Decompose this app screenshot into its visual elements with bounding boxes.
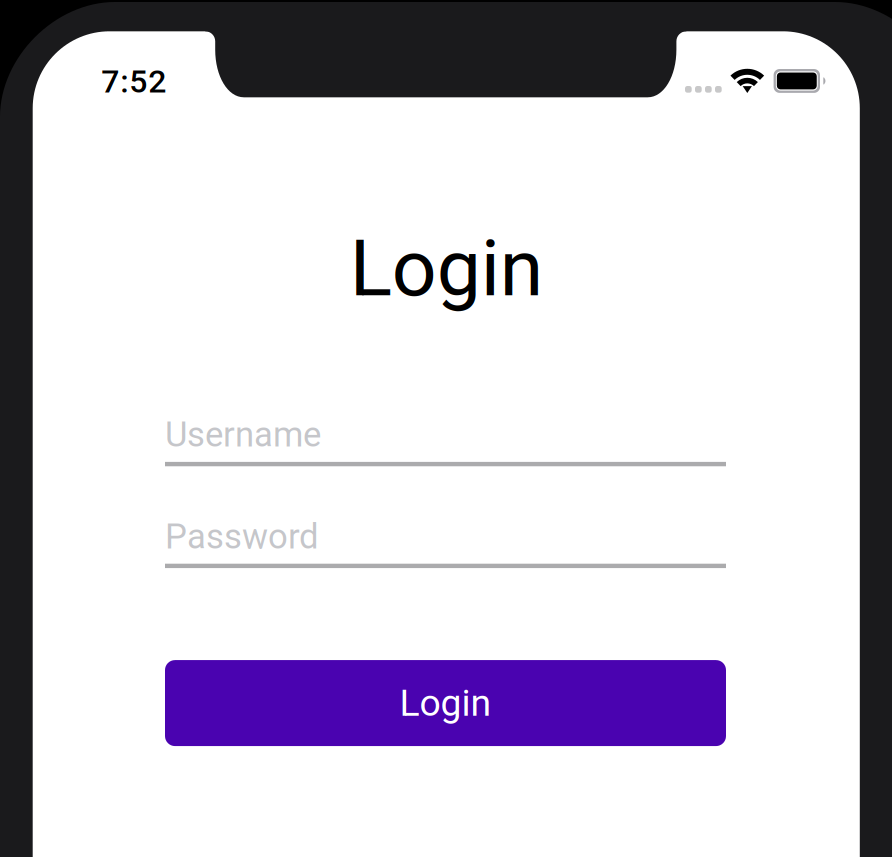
- staticText: Password: [165, 516, 319, 557]
- button[interactable]: Password: [165, 513, 726, 568]
- button[interactable]: Username: [165, 411, 726, 466]
- staticText: Login: [399, 681, 491, 725]
- staticText: 7:52: [101, 63, 166, 100]
- staticText: Username: [165, 414, 321, 455]
- button[interactable]: Login: [165, 660, 726, 746]
- staticText: Login: [350, 222, 543, 314]
